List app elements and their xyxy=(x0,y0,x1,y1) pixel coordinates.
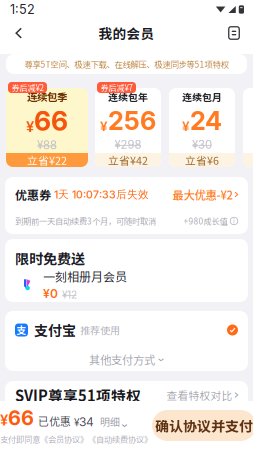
button[interactable]: 订单记录 xyxy=(219,19,249,47)
staticText: ¥30 xyxy=(192,138,212,151)
button[interactable]: 其他支付方式 xyxy=(5,348,248,370)
staticText: 券后减¥7 xyxy=(100,82,132,93)
staticText: ¥ xyxy=(100,118,108,135)
staticText: 24 xyxy=(190,105,222,136)
staticText: 支 xyxy=(16,323,26,337)
staticText: 到期前一天自动续费3个月，可随时取消 xyxy=(15,215,156,227)
button[interactable]: 返回 xyxy=(4,19,34,47)
staticText: 66 xyxy=(8,406,34,430)
staticText: 支付即同意《会员协议》《自动续费协议》 xyxy=(0,433,152,445)
button[interactable]: 一刻相册月会员 xyxy=(5,268,248,300)
staticText: 推荐使用 xyxy=(80,323,120,337)
staticText: 支付宝 xyxy=(34,320,76,340)
staticText: i xyxy=(233,217,235,225)
staticText: ¥ xyxy=(26,118,34,136)
staticText: ¥0 xyxy=(43,286,58,301)
staticText: SVIP尊享51项特权 xyxy=(15,384,141,406)
button[interactable]: 优惠券 xyxy=(5,179,248,210)
staticText: 立省¥6 xyxy=(185,152,219,168)
staticText: 明细 xyxy=(100,414,120,429)
button[interactable]: 连续包季 xyxy=(6,82,88,167)
staticText: 连续包季 xyxy=(27,89,67,104)
staticText: 尊享5T空间、极速下载、在线解压、极速同步等51项特权 xyxy=(24,58,228,70)
staticText: 立省¥22 xyxy=(27,152,67,168)
staticText: 我的会员 xyxy=(98,23,154,43)
staticText: 立省¥42 xyxy=(108,152,148,168)
staticText: 确认协议并支付 xyxy=(155,415,253,436)
button[interactable]: 连续 xyxy=(243,82,253,167)
staticText: ¥ xyxy=(182,118,190,135)
staticText: 其他支付方式 xyxy=(89,351,155,368)
staticText: 已优惠 xyxy=(38,413,71,429)
staticText: ¥12 xyxy=(62,289,77,301)
staticText: ¥298 xyxy=(114,138,141,151)
button[interactable]: 连续包年 xyxy=(95,82,161,167)
button[interactable]: 确认协议并支付 xyxy=(152,410,253,441)
staticText: ¥88 xyxy=(37,138,57,152)
staticText: 优惠券 xyxy=(15,186,51,203)
staticText: +980成长值 xyxy=(183,215,227,227)
staticText: 1:52 xyxy=(10,2,35,17)
staticText: 256 xyxy=(108,105,156,136)
staticText: 查看特权对比 xyxy=(166,387,232,403)
button[interactable]: 连续包月 xyxy=(169,82,235,167)
staticText: 一刻相册月会员 xyxy=(43,268,127,285)
staticText: ¥ xyxy=(71,416,79,429)
staticText: 1天 10:07:33后失效 xyxy=(51,188,149,201)
button[interactable]: 支 xyxy=(5,311,248,348)
staticText: 连续包月 xyxy=(182,90,222,104)
staticText: 连续包年 xyxy=(108,90,148,104)
staticText: 34 xyxy=(79,415,94,429)
staticText: ¥ xyxy=(0,411,8,429)
staticText: 66 xyxy=(34,105,68,137)
button[interactable]: SVIP尊享51项特权 xyxy=(5,381,248,409)
staticText: 限时免费送 xyxy=(15,248,85,268)
staticText: 券后减¥2 xyxy=(11,82,43,93)
staticText: 最大优惠-¥2 xyxy=(172,186,232,203)
